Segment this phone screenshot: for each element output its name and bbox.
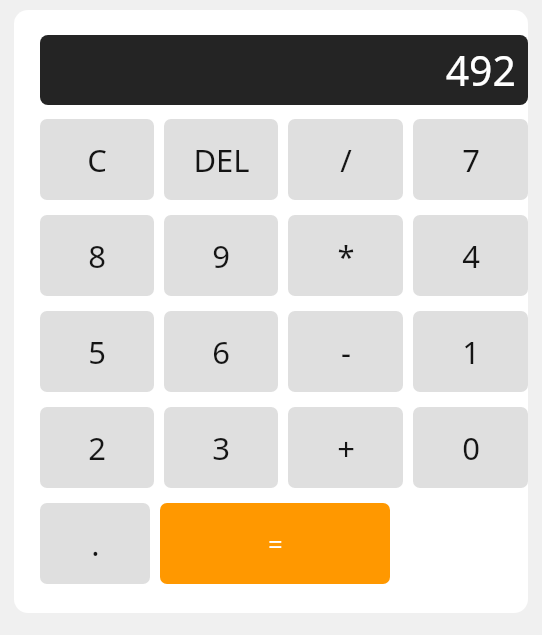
staticText: 2	[88, 427, 106, 469]
button[interactable]: C	[40, 119, 154, 200]
staticText: 6	[212, 331, 230, 373]
button[interactable]: 9	[164, 215, 278, 296]
button[interactable]: 7	[413, 119, 528, 200]
staticText: 5	[88, 331, 106, 373]
button[interactable]: DEL	[164, 119, 278, 200]
staticText: 492	[445, 42, 516, 98]
staticText: .	[91, 523, 100, 565]
button[interactable]: 6	[164, 311, 278, 392]
button[interactable]: .	[40, 503, 150, 584]
staticText: 4	[462, 235, 480, 277]
button[interactable]: 4	[413, 215, 528, 296]
staticText: 1	[462, 331, 480, 373]
button[interactable]: 0	[413, 407, 528, 488]
button[interactable]: +	[288, 407, 403, 488]
button[interactable]: 3	[164, 407, 278, 488]
button[interactable]: 5	[40, 311, 154, 392]
button[interactable]: 8	[40, 215, 154, 296]
staticText: =	[268, 527, 283, 561]
staticText: 7	[462, 139, 480, 181]
staticText: -	[341, 331, 351, 373]
staticText: 9	[212, 235, 230, 277]
staticText: /	[340, 139, 352, 181]
staticText: C	[87, 139, 107, 181]
button[interactable]: -	[288, 311, 403, 392]
button[interactable]: 1	[413, 311, 528, 392]
button[interactable]: =	[160, 503, 390, 584]
staticText: +	[337, 427, 355, 469]
staticText: 8	[88, 235, 106, 277]
staticText: DEL	[193, 139, 250, 181]
staticText: *	[337, 235, 355, 277]
button[interactable]: /	[288, 119, 403, 200]
button[interactable]: *	[288, 215, 403, 296]
staticText: 0	[462, 427, 480, 469]
button[interactable]: 2	[40, 407, 154, 488]
staticText: 3	[212, 427, 230, 469]
